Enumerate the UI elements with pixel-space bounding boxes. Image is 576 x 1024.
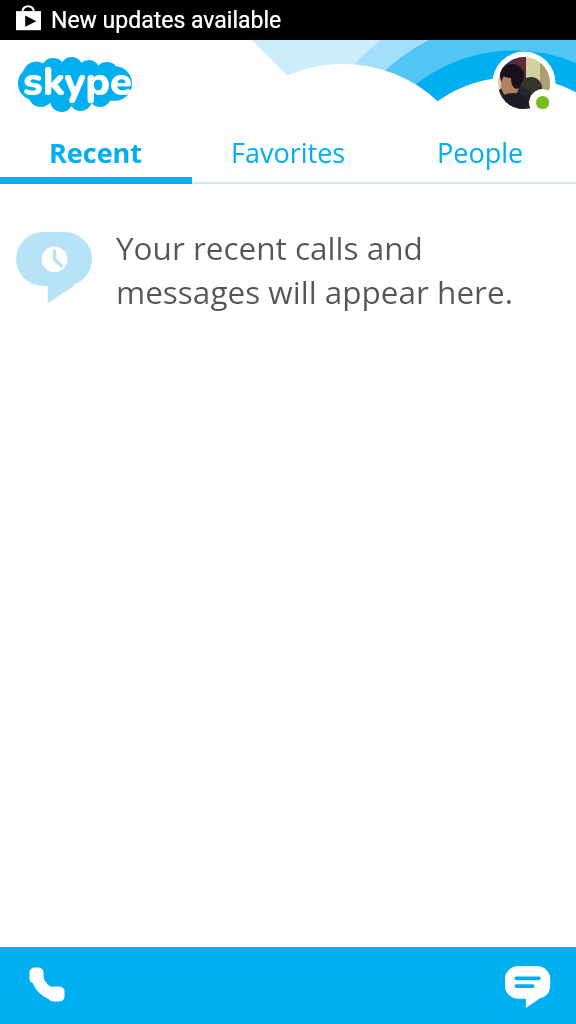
staticText: People [437, 134, 524, 171]
staticText: TM [129, 67, 143, 79]
staticText: Your recent calls and messages will appe… [116, 226, 513, 313]
staticText: Favorites [231, 134, 346, 171]
button[interactable]: Calls [0, 947, 96, 1024]
button[interactable]: People [384, 131, 576, 174]
staticText: Recent [49, 134, 143, 171]
button[interactable]: New chat [480, 947, 576, 1024]
button[interactable]: Profile [492, 51, 558, 117]
staticText: New updates available [51, 7, 282, 34]
button[interactable]: Favorites [192, 131, 384, 174]
button[interactable]: Recent [0, 131, 192, 174]
staticText: skype [23, 55, 132, 106]
